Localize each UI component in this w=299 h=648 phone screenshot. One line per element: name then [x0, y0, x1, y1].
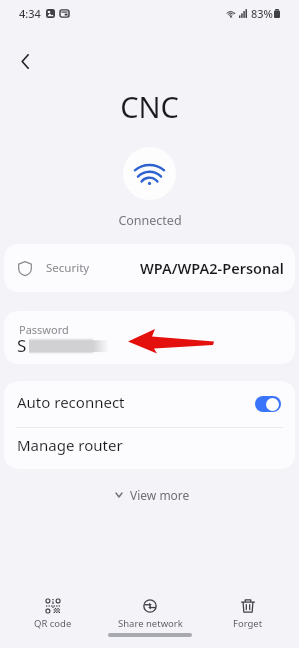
staticText: Forget: [233, 617, 263, 630]
staticText: S: [17, 334, 27, 357]
staticText: Auto reconnect: [17, 392, 125, 412]
button[interactable]: Password: [4, 311, 295, 364]
button[interactable]: Share network: [102, 590, 198, 634]
button[interactable]: QR code: [5, 590, 101, 634]
button[interactable]: Auto reconnect toggle: [255, 396, 281, 412]
button[interactable]: Back: [10, 46, 40, 76]
button[interactable]: Forget: [200, 590, 296, 634]
staticText: Share network: [118, 617, 183, 630]
staticText: QR code: [34, 617, 72, 630]
staticText: 83%: [251, 6, 273, 21]
staticText: Manage router: [17, 435, 123, 455]
staticText: View more: [130, 487, 190, 503]
staticText: Password: [19, 322, 69, 337]
staticText: CNC: [120, 87, 179, 126]
button[interactable]: Manage router: [17, 428, 281, 469]
button[interactable]: Security: [4, 244, 295, 292]
staticText: Connected: [118, 212, 182, 229]
staticText: Security: [46, 260, 90, 276]
button[interactable]: View more: [107, 483, 198, 507]
staticText: WPA/WPA2-Personal: [140, 258, 284, 278]
button[interactable]: Auto reconnect: [17, 381, 281, 427]
staticText: 4:34: [19, 6, 41, 21]
